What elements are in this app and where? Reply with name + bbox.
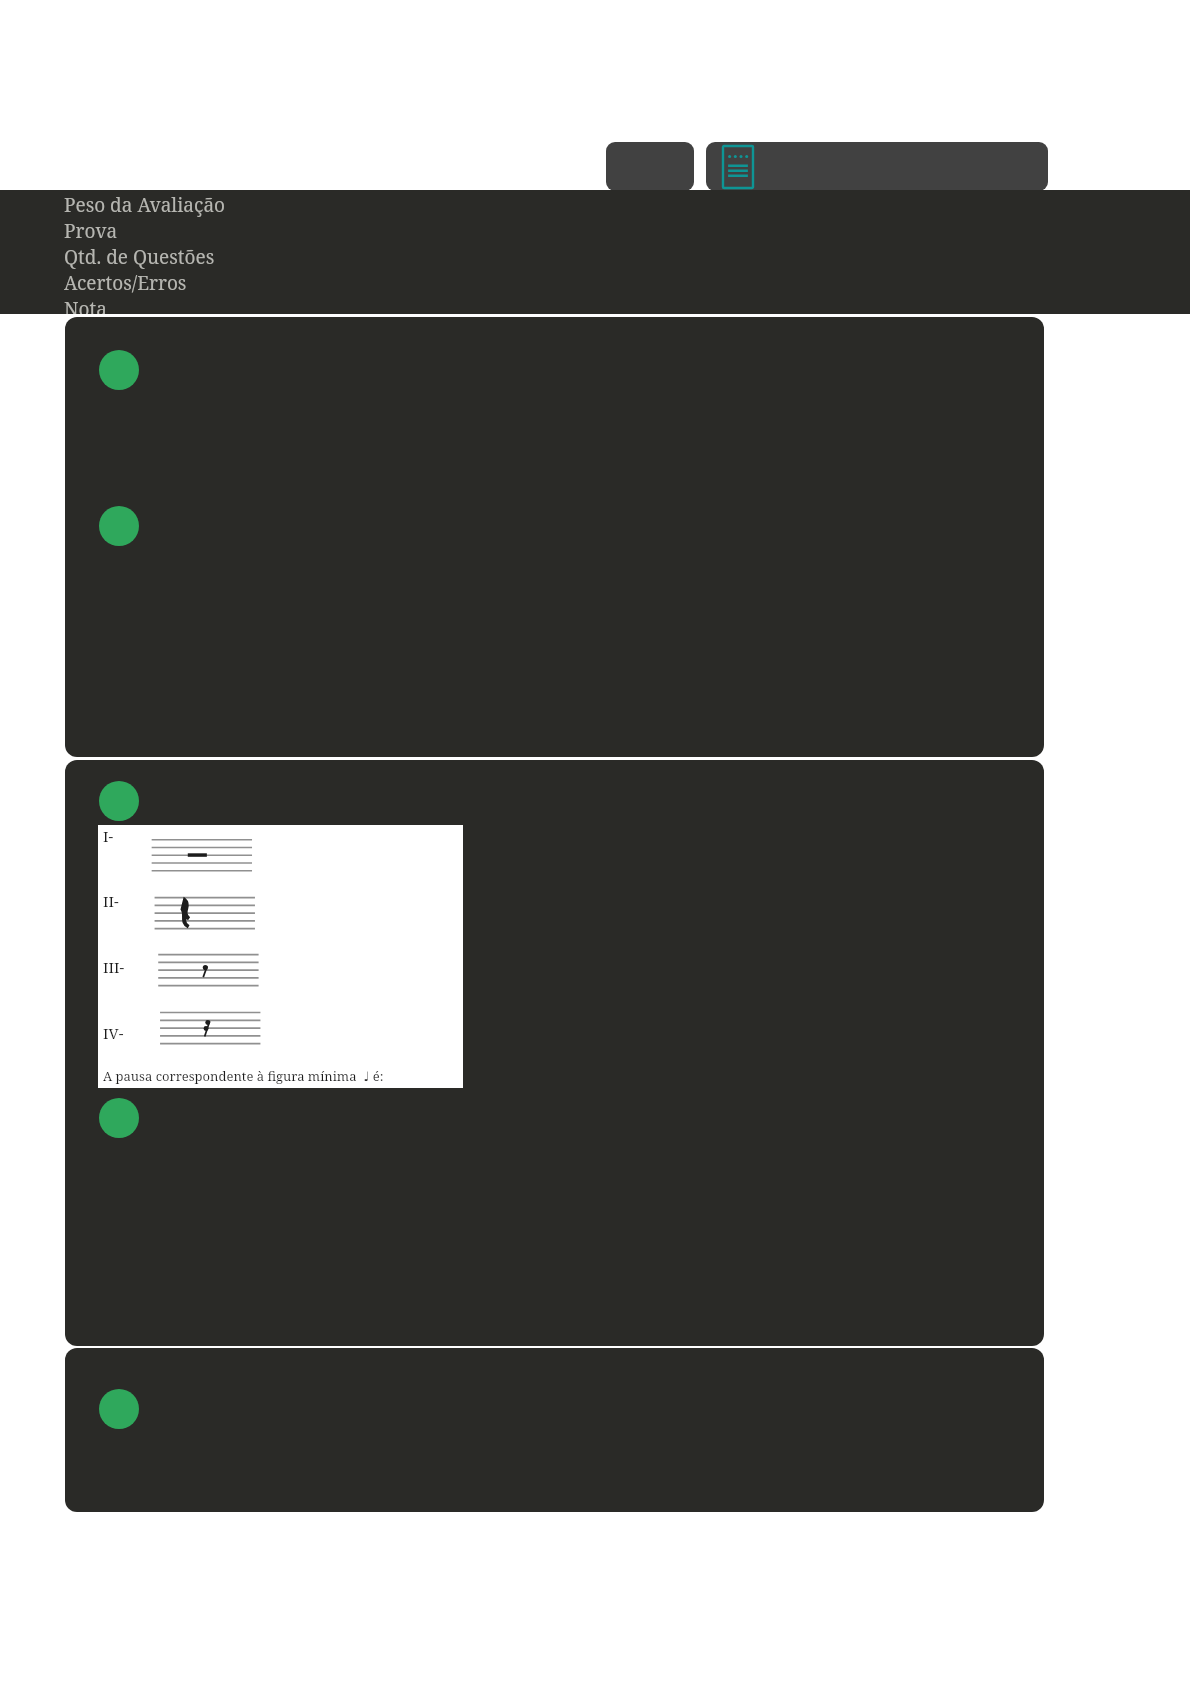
button[interactable]: Gabarito: [706, 142, 1048, 191]
staticText: Qtd. de Questões: [64, 244, 215, 270]
button[interactable]: I-: [65, 760, 1044, 1346]
button[interactable]: [65, 317, 1044, 757]
staticText: IV-: [103, 1023, 124, 1043]
staticText: Acertos/Erros: [64, 270, 187, 296]
staticText: Nota: [64, 296, 107, 314]
button[interactable]: [65, 1348, 1044, 1512]
staticText: I-: [103, 826, 114, 846]
staticText: A pausa correspondente à figura mínima ♩…: [103, 1067, 384, 1085]
staticText: Peso da Avaliação: [64, 192, 226, 218]
staticText: II-: [103, 891, 119, 911]
staticText: III-: [103, 957, 125, 977]
button[interactable]: Voltar: [606, 142, 694, 191]
staticText: Prova: [64, 218, 118, 244]
